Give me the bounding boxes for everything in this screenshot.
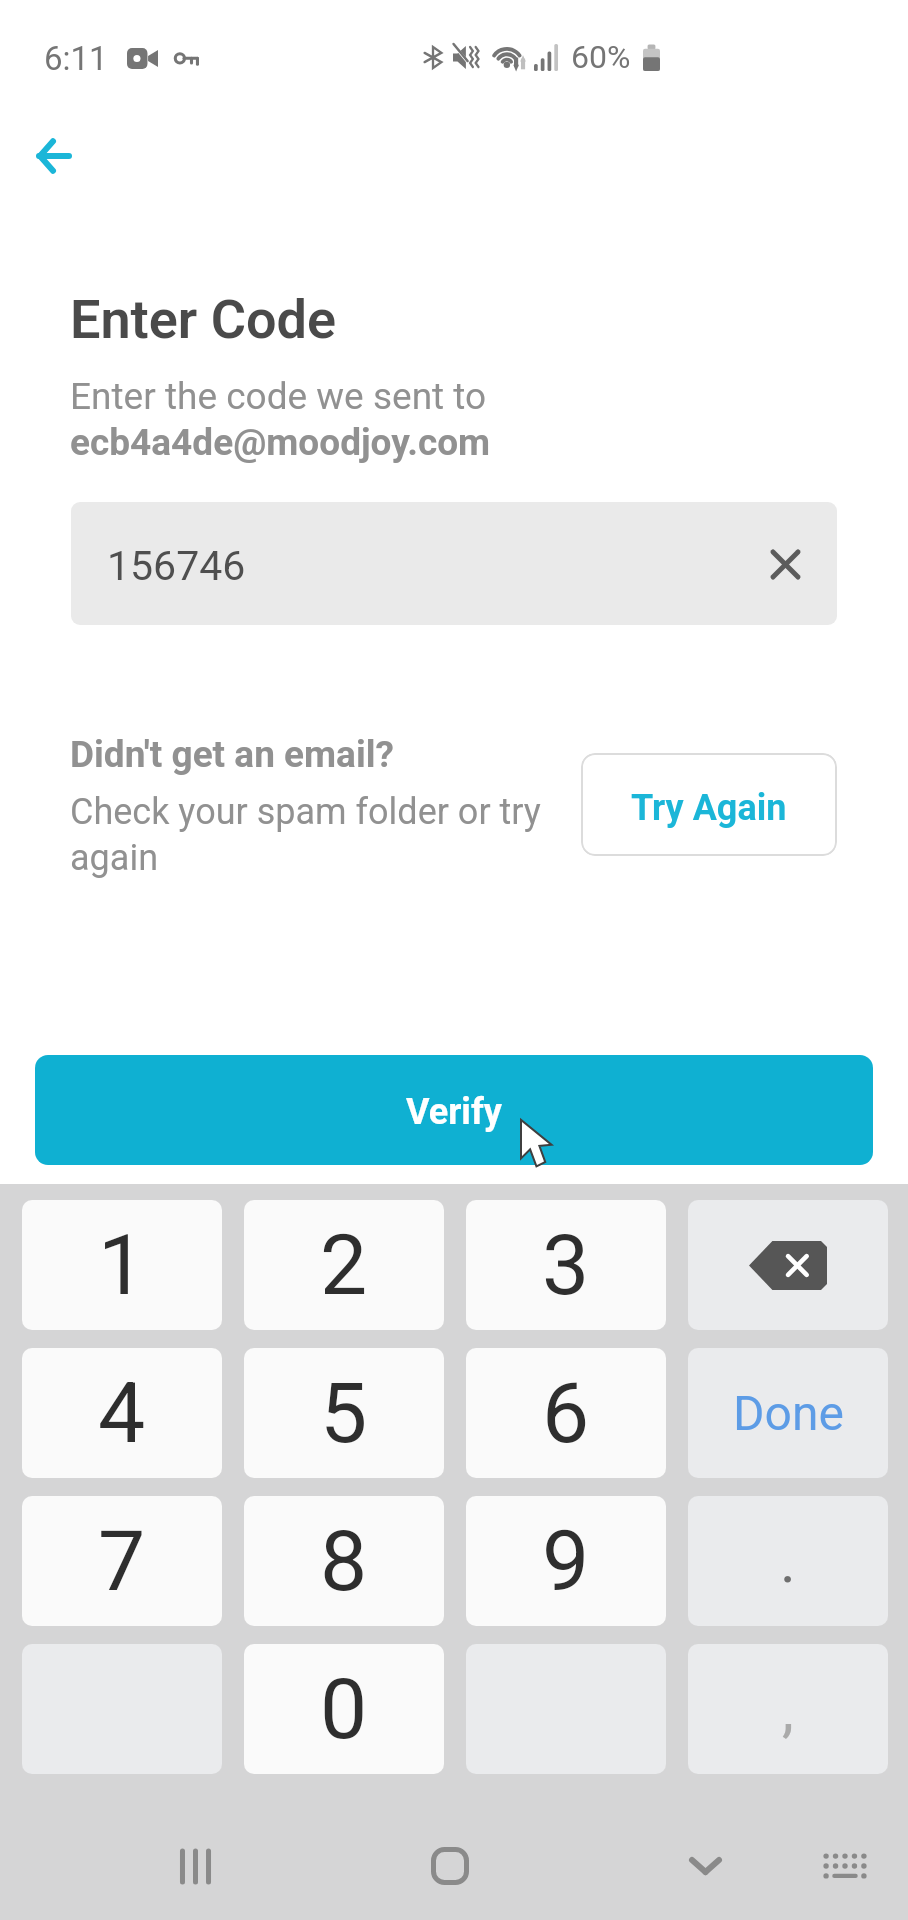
button[interactable]: Clear: [752, 531, 818, 597]
button[interactable]: 8: [244, 1496, 444, 1626]
button[interactable]: Change keyboard: [800, 1821, 890, 1911]
staticText: 3: [542, 1216, 590, 1314]
staticText: 6:11: [44, 39, 108, 78]
button[interactable]: Back: [18, 121, 88, 191]
button[interactable]: Backspace: [688, 1200, 888, 1330]
staticText: 5: [320, 1364, 368, 1462]
staticText: 0: [320, 1660, 368, 1758]
button[interactable]: 3: [466, 1200, 666, 1330]
staticText: 60%: [571, 38, 631, 76]
staticText: 4: [98, 1364, 146, 1462]
staticText: 7: [98, 1512, 146, 1610]
button[interactable]: 9: [466, 1496, 666, 1626]
staticText: Check your spam folder or try again: [70, 791, 570, 879]
button[interactable]: Hide keyboard: [660, 1821, 750, 1911]
staticText: 6: [542, 1364, 590, 1462]
staticText: .: [780, 1526, 796, 1596]
staticText: 2: [320, 1216, 368, 1314]
button[interactable]: 1: [22, 1200, 222, 1330]
button[interactable]: 7: [22, 1496, 222, 1626]
button[interactable]: 0: [244, 1644, 444, 1774]
staticText: ,: [782, 1674, 794, 1744]
staticText: Verify: [406, 1091, 502, 1133]
staticText: Didn't get an email?: [70, 733, 394, 776]
button[interactable]: Recent apps: [150, 1821, 240, 1911]
button[interactable]: Try Again: [581, 753, 837, 856]
button[interactable]: Decimal point: [688, 1496, 888, 1626]
staticText: Enter the code we sent to: [70, 375, 487, 418]
button[interactable]: 2: [244, 1200, 444, 1330]
button[interactable]: Home: [405, 1821, 495, 1911]
staticText: Enter Code: [70, 288, 336, 351]
staticText: Try Again: [631, 787, 787, 829]
staticText: 8: [320, 1512, 368, 1610]
button[interactable]: 156746: [71, 502, 837, 625]
staticText: Done: [733, 1385, 844, 1441]
button[interactable]: 6: [466, 1348, 666, 1478]
staticText: 156746: [107, 542, 246, 590]
button[interactable]: Verify: [35, 1055, 873, 1165]
staticText: 9: [542, 1512, 590, 1610]
button[interactable]: Comma: [688, 1644, 888, 1774]
button[interactable]: 4: [22, 1348, 222, 1478]
staticText: ecb4a4de@moodjoy.com: [70, 421, 491, 464]
staticText: 1: [98, 1216, 146, 1314]
button[interactable]: 5: [244, 1348, 444, 1478]
button[interactable]: Done: [688, 1348, 888, 1478]
